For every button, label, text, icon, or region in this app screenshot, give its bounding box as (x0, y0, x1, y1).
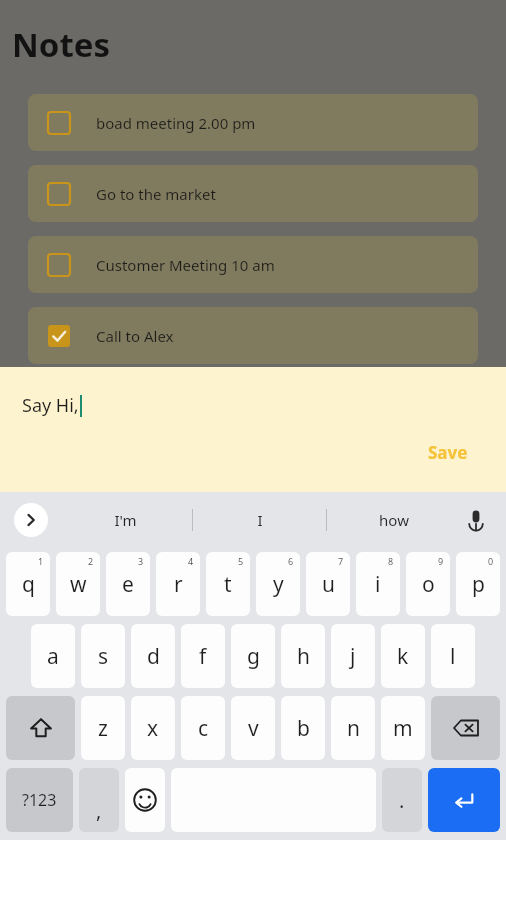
staticText: 5 (238, 555, 244, 567)
button[interactable]: Unchecked (48, 254, 70, 276)
staticText: i (375, 570, 381, 599)
staticText: m (393, 714, 413, 743)
button[interactable]: n (331, 696, 375, 760)
staticText: 4 (188, 555, 194, 567)
button[interactable]: Say Hi, (22, 393, 82, 418)
button[interactable]: g (231, 624, 275, 688)
button[interactable]: x (131, 696, 175, 760)
button[interactable]: i (356, 552, 400, 616)
button[interactable]: how (327, 492, 460, 548)
staticText: . (399, 787, 405, 814)
staticText: s (98, 642, 109, 671)
staticText: g (247, 642, 260, 671)
staticText: Notes (12, 22, 111, 67)
staticText: 8 (388, 555, 394, 567)
staticText: 7 (338, 555, 344, 567)
button[interactable]: More suggestions (14, 503, 48, 537)
staticText: 9 (438, 555, 444, 567)
staticText: Save (428, 441, 468, 464)
staticText: 0 (488, 555, 494, 567)
staticText: 3 (138, 555, 144, 567)
staticText: u (322, 570, 335, 599)
staticText: boad meeting 2.00 pm (96, 113, 256, 133)
button[interactable]: a (31, 624, 75, 688)
staticText: y (273, 570, 284, 599)
button[interactable]: , (79, 768, 119, 832)
staticText: Go to the market (96, 184, 216, 204)
staticText: p (472, 570, 485, 599)
staticText: l (450, 642, 456, 671)
button[interactable]: Unchecked (48, 183, 70, 205)
button[interactable]: c (181, 696, 225, 760)
staticText: 2 (88, 555, 94, 567)
staticText: 1 (38, 555, 44, 567)
staticText: Say Hi, (22, 393, 79, 418)
staticText: , (96, 797, 102, 824)
staticText: z (98, 714, 108, 743)
button[interactable]: Unchecked (28, 165, 478, 222)
staticText: d (147, 642, 160, 671)
staticText: I'm (114, 510, 137, 530)
staticText: x (147, 714, 159, 743)
staticText: c (198, 714, 209, 743)
button[interactable]: u (306, 552, 350, 616)
button[interactable]: Unchecked (28, 236, 478, 293)
button[interactable]: w (56, 552, 100, 616)
staticText: ?123 (22, 789, 57, 811)
button[interactable]: Checked (48, 325, 70, 347)
staticText: h (297, 642, 310, 671)
button[interactable]: Unchecked (28, 94, 478, 151)
button[interactable]: . (382, 768, 422, 832)
button[interactable]: Backspace (431, 696, 500, 760)
button[interactable]: Save (422, 439, 474, 466)
staticText: 6 (288, 555, 294, 567)
button[interactable]: y (256, 552, 300, 616)
button[interactable]: e (106, 552, 150, 616)
button[interactable]: k (381, 624, 425, 688)
button[interactable]: z (81, 696, 125, 760)
staticText: a (47, 642, 59, 671)
staticText: v (248, 714, 259, 743)
button[interactable]: j (331, 624, 375, 688)
button[interactable]: Unchecked (48, 112, 70, 134)
button[interactable]: Shift (6, 696, 75, 760)
button[interactable]: m (381, 696, 425, 760)
button[interactable]: I (193, 492, 326, 548)
staticText: k (397, 642, 409, 671)
staticText: t (224, 570, 232, 599)
staticText: w (70, 570, 87, 599)
button[interactable]: r (156, 552, 200, 616)
button[interactable]: l (431, 624, 475, 688)
staticText: o (422, 570, 435, 599)
button[interactable]: ?123 (6, 768, 73, 832)
button[interactable]: f (181, 624, 225, 688)
staticText: n (347, 714, 360, 743)
button[interactable]: s (81, 624, 125, 688)
button[interactable]: Enter (428, 768, 500, 832)
staticText: q (22, 570, 35, 599)
staticText: e (122, 570, 134, 599)
button[interactable]: o (406, 552, 450, 616)
staticText: r (174, 570, 183, 599)
button[interactable]: Emoji (125, 768, 165, 832)
button[interactable]: Checked (28, 307, 478, 364)
button[interactable]: Voice input (456, 500, 496, 540)
staticText: Call to Alex (96, 326, 174, 346)
button[interactable]: h (281, 624, 325, 688)
button[interactable]: t (206, 552, 250, 616)
staticText: how (379, 510, 409, 530)
button[interactable]: v (231, 696, 275, 760)
staticText: Customer Meeting 10 am (96, 255, 275, 275)
button[interactable]: q (6, 552, 50, 616)
staticText: b (297, 714, 310, 743)
staticText: f (199, 642, 207, 671)
button[interactable]: d (131, 624, 175, 688)
staticText: I (257, 510, 263, 530)
staticText: j (350, 642, 356, 671)
button[interactable]: I'm (58, 492, 192, 548)
button[interactable]: p (456, 552, 500, 616)
button[interactable]: b (281, 696, 325, 760)
